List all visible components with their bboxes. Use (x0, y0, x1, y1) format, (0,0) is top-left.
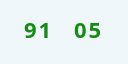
staticText: 91 (24, 14, 54, 44)
staticText: 05 (74, 14, 104, 44)
